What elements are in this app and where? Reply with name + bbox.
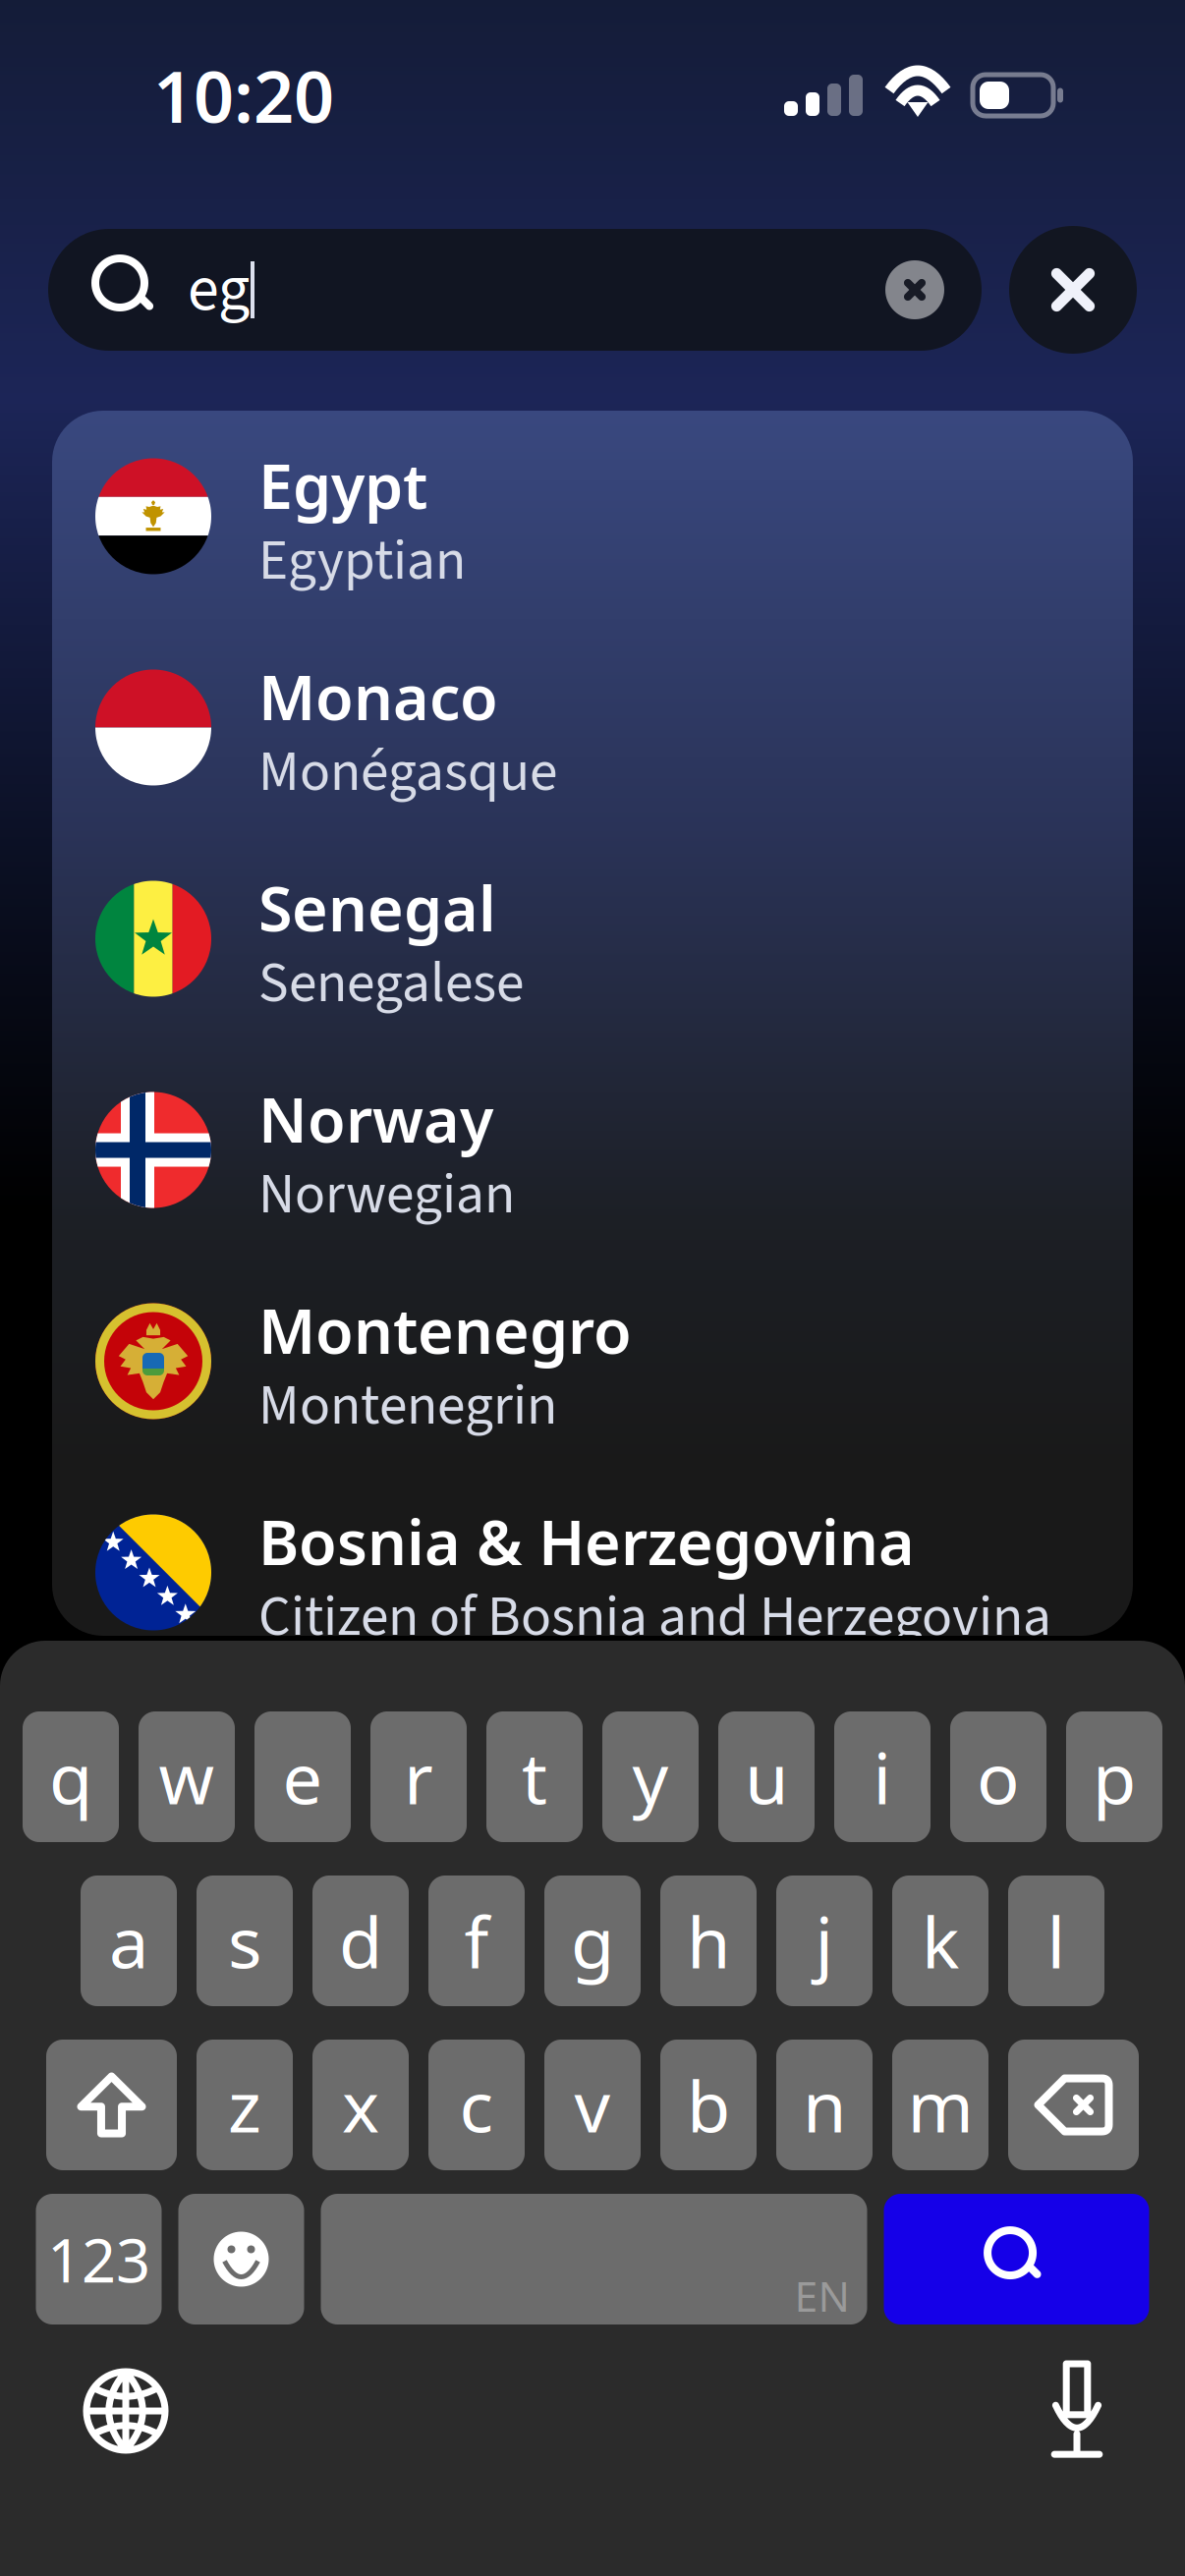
staticText: n bbox=[803, 2058, 846, 2152]
staticText: Montenegro bbox=[258, 1288, 632, 1372]
button[interactable]: Norway bbox=[52, 1044, 1133, 1256]
staticText: k bbox=[922, 1894, 959, 1988]
staticText: y bbox=[632, 1730, 669, 1824]
button[interactable]: d bbox=[312, 1876, 409, 2006]
button[interactable]: e bbox=[254, 1711, 351, 1842]
button[interactable]: o bbox=[950, 1711, 1046, 1842]
staticText: Senegalese bbox=[258, 944, 524, 1024]
button[interactable] bbox=[884, 2194, 1149, 2324]
button[interactable]: u bbox=[718, 1711, 815, 1842]
button[interactable]: Bosnia & Herzegovina bbox=[52, 1467, 1133, 1678]
staticText: Citizen of Bosnia and Herzegovina bbox=[258, 1577, 1051, 1657]
button[interactable]: f bbox=[428, 1876, 525, 2006]
staticText: u bbox=[745, 1730, 788, 1824]
staticText: s bbox=[228, 1894, 261, 1988]
staticText: w bbox=[159, 1730, 215, 1824]
button[interactable]: z bbox=[197, 2040, 293, 2170]
staticText: r bbox=[404, 1730, 433, 1824]
staticText: q bbox=[49, 1730, 92, 1824]
staticText: x bbox=[342, 2058, 379, 2152]
button[interactable]: q bbox=[23, 1711, 119, 1842]
button[interactable]: r bbox=[370, 1711, 467, 1842]
staticText: f bbox=[464, 1894, 489, 1988]
button[interactable]: n bbox=[776, 2040, 873, 2170]
staticText: Bosnia & Herzegovina bbox=[258, 1499, 915, 1583]
button[interactable]: t bbox=[486, 1711, 583, 1842]
staticText: m bbox=[907, 2058, 973, 2152]
staticText: h bbox=[687, 1894, 730, 1988]
staticText: p bbox=[1093, 1730, 1136, 1824]
button[interactable]: h bbox=[660, 1876, 757, 2006]
staticText: Monégasque bbox=[258, 732, 557, 812]
staticText: Norwegian bbox=[258, 1155, 515, 1235]
button[interactable] bbox=[178, 2194, 304, 2324]
button[interactable]: Clear text bbox=[885, 260, 944, 319]
staticText: b bbox=[687, 2058, 730, 2152]
staticText: eg bbox=[188, 245, 250, 335]
staticText: j bbox=[815, 1894, 834, 1988]
staticText: Monaco bbox=[258, 654, 498, 738]
button[interactable]: EN bbox=[321, 2194, 867, 2324]
button[interactable]: Next keyboard bbox=[86, 2372, 165, 2450]
button[interactable]: a bbox=[81, 1876, 177, 2006]
button[interactable]: j bbox=[776, 1876, 873, 2006]
button[interactable]: Egypt bbox=[52, 411, 1133, 622]
staticText: v bbox=[574, 2058, 611, 2152]
staticText: l bbox=[1047, 1894, 1066, 1988]
button[interactable]: Close search bbox=[1009, 226, 1137, 354]
button[interactable]: i bbox=[834, 1711, 931, 1842]
staticText: a bbox=[109, 1894, 148, 1988]
staticText: 10:20 bbox=[153, 48, 334, 142]
button[interactable]: c bbox=[428, 2040, 525, 2170]
button[interactable]: w bbox=[139, 1711, 235, 1842]
staticText: c bbox=[459, 2058, 494, 2152]
button[interactable]: v bbox=[544, 2040, 641, 2170]
staticText: Egypt bbox=[258, 443, 427, 527]
staticText: 123 bbox=[47, 2219, 150, 2299]
staticText: t bbox=[522, 1730, 547, 1824]
button[interactable] bbox=[1008, 2040, 1139, 2170]
staticText: i bbox=[873, 1730, 892, 1824]
staticText: EN bbox=[794, 2268, 849, 2323]
staticText: d bbox=[339, 1894, 382, 1988]
staticText: Senegal bbox=[258, 866, 496, 949]
staticText: Norway bbox=[258, 1077, 493, 1161]
button[interactable]: k bbox=[892, 1876, 988, 2006]
button[interactable]: Dictate bbox=[1047, 2364, 1106, 2458]
button[interactable]: b bbox=[660, 2040, 757, 2170]
staticText: z bbox=[228, 2058, 261, 2152]
staticText: Montenegrin bbox=[258, 1366, 557, 1446]
button[interactable]: 123 bbox=[36, 2194, 162, 2324]
button[interactable]: x bbox=[312, 2040, 409, 2170]
staticText: Egyptian bbox=[258, 521, 466, 601]
button[interactable]: g bbox=[544, 1876, 641, 2006]
staticText: e bbox=[282, 1730, 323, 1824]
button[interactable] bbox=[46, 2040, 177, 2170]
button[interactable]: p bbox=[1066, 1711, 1162, 1842]
button[interactable]: l bbox=[1008, 1876, 1104, 2006]
button[interactable]: Montenegro bbox=[52, 1256, 1133, 1467]
button[interactable]: Monaco bbox=[52, 622, 1133, 833]
button[interactable]: m bbox=[892, 2040, 988, 2170]
button[interactable]: y bbox=[602, 1711, 699, 1842]
button[interactable]: Senegal bbox=[52, 833, 1133, 1044]
button[interactable]: s bbox=[197, 1876, 293, 2006]
staticText: o bbox=[977, 1730, 1020, 1824]
staticText: g bbox=[571, 1894, 614, 1988]
